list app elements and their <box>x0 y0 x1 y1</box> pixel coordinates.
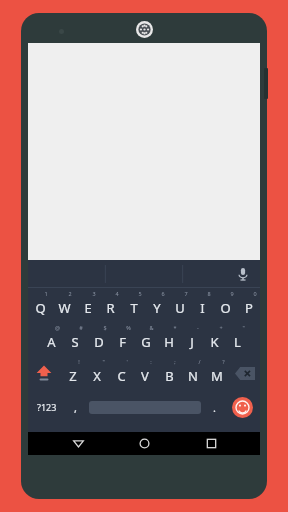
staticText: B <box>165 367 174 385</box>
button[interactable]: # <box>63 322 87 356</box>
staticText: 2 <box>68 290 72 297</box>
button[interactable]: . <box>204 390 224 424</box>
button[interactable]: Home <box>127 432 161 455</box>
button[interactable]: Emoji <box>224 390 260 424</box>
button[interactable]: " <box>226 322 249 356</box>
button[interactable]: 3 <box>76 288 99 322</box>
staticText: E <box>84 299 92 317</box>
button[interactable]: Voice input <box>232 263 254 285</box>
staticText: N <box>188 367 198 385</box>
staticText: / <box>198 358 201 365</box>
staticText: 0 <box>253 290 257 297</box>
button[interactable]: ! <box>60 356 85 390</box>
staticText: K <box>210 333 219 351</box>
staticText: M <box>211 367 223 385</box>
button[interactable]: 8 <box>191 288 214 322</box>
staticText: P <box>245 299 253 317</box>
staticText: & <box>149 324 154 331</box>
button[interactable]: 5 <box>122 288 145 322</box>
staticText: W <box>58 299 71 317</box>
button[interactable]: 7 <box>168 288 191 322</box>
button[interactable]: ? <box>205 356 229 390</box>
button[interactable]: Recents <box>194 432 228 455</box>
staticText: Z <box>69 367 77 385</box>
staticText: Y <box>153 299 161 317</box>
button[interactable]: Shift <box>28 356 60 390</box>
staticText: C <box>117 367 126 385</box>
staticText: 3 <box>92 290 96 297</box>
button[interactable]: % <box>111 322 134 356</box>
staticText: - <box>197 324 199 331</box>
button[interactable]: 4 <box>99 288 122 322</box>
staticText: I <box>200 299 205 317</box>
staticText: 1 <box>44 290 48 297</box>
staticText: D <box>94 333 104 351</box>
button[interactable]: 1 <box>28 288 52 322</box>
button[interactable]: Back <box>61 432 95 455</box>
button[interactable]: 0 <box>237 288 260 322</box>
staticText: + <box>219 324 223 331</box>
button[interactable]: ; <box>157 356 181 390</box>
button[interactable]: Backspace <box>229 356 260 390</box>
staticText: # <box>79 324 83 331</box>
staticText: " <box>102 358 105 365</box>
button[interactable]: Space <box>86 390 204 424</box>
button[interactable]: ?123 <box>28 390 65 424</box>
staticText: @ <box>55 324 60 331</box>
staticText: L <box>234 333 241 351</box>
staticText: 5 <box>138 290 142 297</box>
staticText: ' <box>126 358 128 365</box>
staticText: H <box>164 333 174 351</box>
button[interactable]: / <box>181 356 205 390</box>
staticText: ?123 <box>37 401 57 413</box>
button[interactable]: 2 <box>52 288 76 322</box>
staticText: , <box>74 400 77 415</box>
staticText: U <box>175 299 185 317</box>
staticText: X <box>93 367 101 385</box>
staticText: 4 <box>115 290 119 297</box>
button[interactable]: , <box>65 390 86 424</box>
staticText: 7 <box>184 290 188 297</box>
button[interactable]: - <box>180 322 203 356</box>
staticText: 6 <box>161 290 165 297</box>
staticText: S <box>71 333 79 351</box>
staticText: ! <box>78 358 80 365</box>
staticText: ? <box>222 358 225 365</box>
button[interactable]: ' <box>109 356 133 390</box>
button[interactable]: $ <box>87 322 111 356</box>
staticText: Q <box>35 299 46 317</box>
staticText: " <box>242 324 245 331</box>
staticText: O <box>220 299 231 317</box>
button[interactable]: + <box>203 322 226 356</box>
button[interactable]: : <box>133 356 157 390</box>
staticText: R <box>106 299 115 317</box>
staticText: T <box>130 299 138 317</box>
staticText: J <box>190 333 194 351</box>
staticText: F <box>119 333 126 351</box>
staticText: % <box>126 324 131 331</box>
staticText: 9 <box>230 290 234 297</box>
staticText: V <box>141 367 149 385</box>
button[interactable]: @ <box>39 322 63 356</box>
button[interactable]: " <box>85 356 109 390</box>
staticText: : <box>150 358 152 365</box>
staticText: ; <box>174 358 176 365</box>
staticText: G <box>141 333 151 351</box>
button[interactable]: * <box>157 322 180 356</box>
button[interactable]: & <box>134 322 157 356</box>
staticText: A <box>47 333 56 351</box>
staticText: * <box>173 324 177 331</box>
button[interactable]: 9 <box>214 288 237 322</box>
staticText: 8 <box>207 290 211 297</box>
staticText: . <box>213 400 216 415</box>
staticText: $ <box>103 324 107 331</box>
button[interactable]: 6 <box>145 288 168 322</box>
